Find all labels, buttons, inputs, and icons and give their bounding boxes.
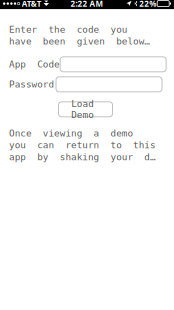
staticText: have been given below…	[9, 36, 150, 47]
staticText: Once viewing a demo	[9, 128, 133, 139]
staticText: App Code	[9, 59, 60, 70]
staticText: Enter the code you	[9, 24, 128, 35]
staticText: app by shaking your d…	[9, 151, 156, 162]
staticText: you can return to this	[9, 140, 156, 151]
staticText: AT&T	[22, 0, 42, 9]
staticText: Password	[9, 79, 54, 90]
staticText: Load Demo	[71, 98, 100, 120]
staticText: 2:22 AM	[70, 0, 103, 9]
staticText: 22%	[139, 0, 156, 9]
button[interactable]: Load Demo	[58, 102, 112, 117]
